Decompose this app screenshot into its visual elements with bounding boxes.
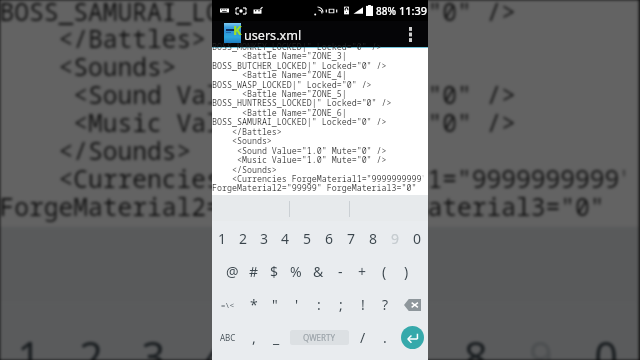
staticText: BOSS_SAMURAI_LOCKED|" Locked="0" /> bbox=[0, 0, 517, 29]
staticText: 9 bbox=[529, 327, 556, 360]
button[interactable]: ABC bbox=[212, 321, 243, 354]
staticText: 1 bbox=[218, 229, 227, 248]
staticText: <Currencies ForgeMaterial1="9999999999" bbox=[212, 173, 423, 185]
button[interactable]: Enter bbox=[401, 326, 424, 349]
staticText: 7 bbox=[347, 229, 356, 248]
staticText: <Music Value="1.0" Mute="0" /> bbox=[212, 154, 387, 166]
button[interactable]: " bbox=[264, 288, 286, 321]
button[interactable]: @ bbox=[222, 255, 243, 288]
staticText: users.xml bbox=[244, 27, 302, 44]
staticText: 4 bbox=[204, 327, 230, 360]
button[interactable]: 3 bbox=[124, 307, 186, 360]
staticText: ? bbox=[382, 295, 389, 314]
button[interactable]: 5 bbox=[248, 307, 313, 360]
button[interactable]: 7 bbox=[340, 222, 362, 255]
staticText: " bbox=[272, 295, 278, 314]
staticText: & bbox=[313, 262, 324, 281]
staticText: 3 bbox=[260, 229, 269, 248]
staticText: K bbox=[233, 21, 242, 39]
staticText: ForgeMaterial2="99999" ForgeMaterial3="0… bbox=[212, 182, 417, 194]
button[interactable] bbox=[212, 227, 425, 304]
button[interactable]: 6 bbox=[313, 307, 378, 360]
staticText: ; bbox=[339, 295, 343, 314]
staticText: </Sounds> bbox=[0, 134, 193, 169]
staticText: - bbox=[338, 262, 343, 281]
button[interactable]: More options bbox=[399, 21, 421, 47]
staticText: 88% bbox=[376, 4, 396, 18]
staticText: # bbox=[249, 262, 259, 281]
button[interactable]: $ bbox=[264, 255, 285, 288]
button[interactable]: ) bbox=[395, 255, 417, 288]
button[interactable]: 8 bbox=[443, 307, 508, 360]
button[interactable]: 1 bbox=[0, 307, 61, 360]
button[interactable] bbox=[284, 195, 356, 221]
staticText: 4 bbox=[281, 229, 290, 248]
staticText: ! bbox=[361, 295, 365, 314]
button[interactable]: Delete bbox=[396, 288, 428, 321]
staticText: <Sounds> bbox=[212, 135, 273, 147]
button[interactable]: 3 bbox=[254, 222, 275, 255]
staticText: <Battle Name="ZONE_6| bbox=[0, 0, 399, 1]
button[interactable]: 0 bbox=[573, 307, 639, 360]
button[interactable]: # bbox=[243, 255, 264, 288]
button[interactable]: 4 bbox=[186, 307, 248, 360]
button[interactable]: , bbox=[243, 321, 265, 354]
button[interactable]: & bbox=[307, 255, 329, 288]
staticText: BOSS_WASP_LOCKED|" Locked="0" /> bbox=[212, 79, 372, 91]
staticText: 8 bbox=[369, 229, 378, 248]
button[interactable]: ; bbox=[330, 288, 352, 321]
staticText: ABC bbox=[220, 332, 236, 343]
button[interactable]: 1 bbox=[212, 222, 233, 255]
staticText: % bbox=[290, 262, 302, 281]
staticText: 6 bbox=[325, 229, 334, 248]
staticText: 7 bbox=[399, 327, 425, 360]
button[interactable]: 7 bbox=[378, 307, 443, 360]
staticText: <Battle Name="ZONE_6| bbox=[212, 107, 347, 119]
staticText: =\< bbox=[221, 300, 235, 310]
button[interactable]: / bbox=[352, 321, 374, 354]
button[interactable]: 8 bbox=[362, 222, 384, 255]
button[interactable]: _ bbox=[265, 321, 287, 354]
staticText: <Battle Name="ZONE_3| bbox=[212, 50, 347, 62]
staticText: / bbox=[360, 328, 366, 347]
button[interactable]: ' bbox=[286, 288, 308, 321]
staticText: 0 bbox=[413, 229, 422, 248]
staticText: . bbox=[383, 328, 387, 347]
button[interactable]: 0 bbox=[406, 222, 428, 255]
staticText: 5 bbox=[303, 229, 312, 248]
button[interactable]: 9 bbox=[508, 307, 573, 360]
button[interactable]: ? bbox=[374, 288, 396, 321]
button[interactable]: 4 bbox=[275, 222, 296, 255]
staticText: 3 bbox=[141, 327, 168, 360]
button[interactable]: - bbox=[329, 255, 351, 288]
button[interactable]: % bbox=[285, 255, 307, 288]
button[interactable]: 9 bbox=[384, 222, 406, 255]
staticText: 6 bbox=[334, 327, 360, 360]
staticText: + bbox=[358, 262, 367, 281]
button[interactable]: * bbox=[243, 288, 264, 321]
staticText: 8 bbox=[464, 327, 491, 360]
button[interactable]: 2 bbox=[233, 222, 254, 255]
staticText: 2 bbox=[79, 327, 106, 360]
button[interactable]: 2 bbox=[62, 307, 124, 360]
button[interactable]: QWERTY bbox=[290, 330, 349, 345]
button[interactable] bbox=[425, 227, 638, 304]
staticText: * bbox=[250, 295, 258, 314]
staticText: 9 bbox=[391, 229, 400, 248]
button[interactable]: 5 bbox=[296, 222, 318, 255]
staticText: BOSS_HUNTRESS_LOCKED|" Locked="0" /> bbox=[212, 97, 392, 109]
staticText: <Sounds> bbox=[0, 50, 179, 85]
button[interactable]: : bbox=[308, 288, 330, 321]
button[interactable]: + bbox=[351, 255, 373, 288]
button[interactable]: 6 bbox=[318, 222, 340, 255]
button[interactable]: Symbols bbox=[212, 288, 243, 321]
button[interactable]: . bbox=[374, 321, 396, 354]
staticText: QWERTY bbox=[303, 332, 336, 343]
staticText: ) bbox=[404, 262, 409, 281]
button[interactable]: ! bbox=[352, 288, 374, 321]
staticText: </Sounds> bbox=[212, 163, 277, 175]
button[interactable]: ( bbox=[373, 255, 395, 288]
